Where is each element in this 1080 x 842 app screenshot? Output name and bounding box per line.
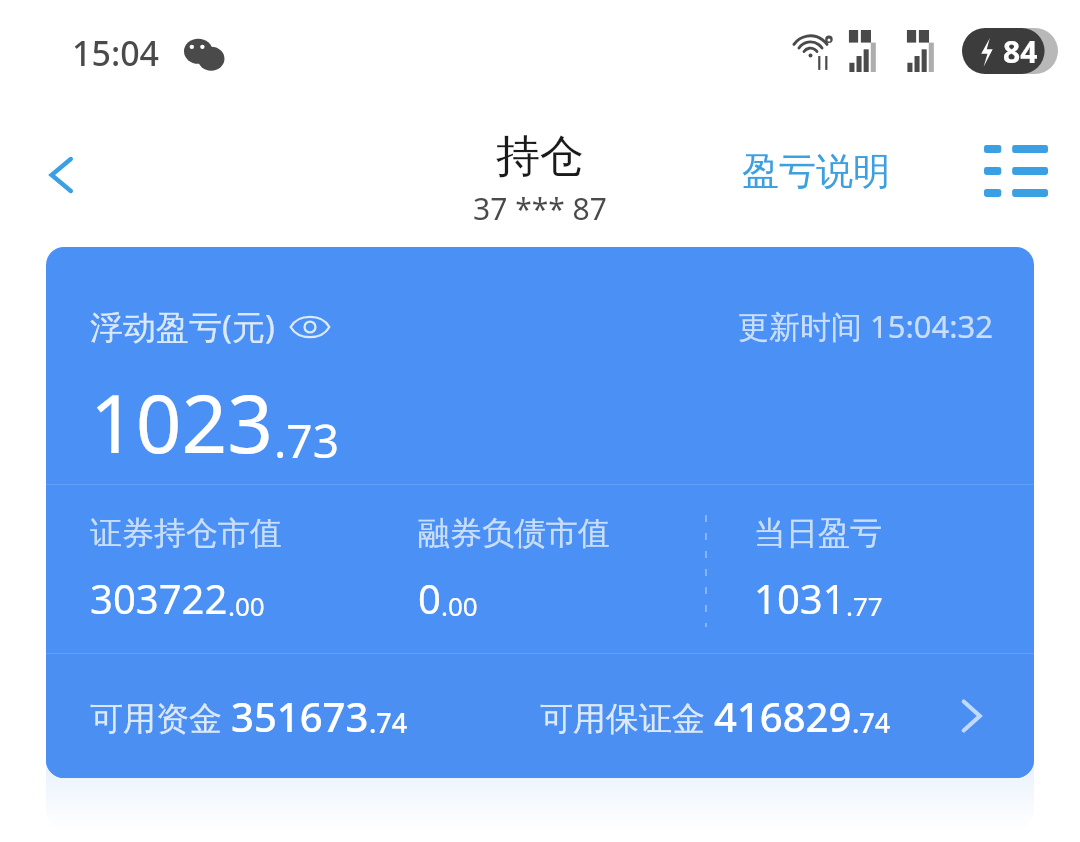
staticText: 更新时间 15:04:32 (738, 305, 994, 347)
staticText: 37 *** 87 (473, 188, 607, 229)
staticText: 0 (418, 571, 441, 625)
button[interactable]: List view (976, 131, 1056, 211)
staticText: 融券负债市值 (418, 513, 610, 553)
staticText: 303722 (90, 571, 228, 625)
staticText: 浮动盈亏(元) (90, 304, 275, 349)
staticText: .74 (369, 704, 408, 741)
staticText: 1031 (754, 571, 846, 625)
staticText: 84 (1003, 31, 1038, 72)
staticText: 15:04 (72, 30, 160, 76)
staticText: .00 (228, 588, 265, 623)
staticText: 416829 (714, 689, 852, 743)
staticText: .74 (852, 704, 891, 741)
staticText: .77 (846, 588, 883, 623)
other: Toggle visibility (289, 306, 331, 348)
other: More account details (950, 694, 994, 738)
staticText: .00 (441, 588, 478, 623)
button[interactable]: 可用资金 (46, 654, 1034, 778)
button[interactable]: 浮动盈亏(元) (90, 304, 331, 349)
staticText: .73 (274, 409, 339, 472)
staticText: 可用保证金 (540, 695, 714, 740)
staticText: 351673 (231, 689, 369, 743)
button[interactable]: Back (20, 133, 104, 217)
staticText: 持仓 (496, 129, 584, 184)
staticText: 1023 (90, 367, 274, 476)
staticText: 可用资金 (90, 695, 231, 740)
button[interactable]: 盈亏说明 (736, 140, 896, 203)
staticText: 盈亏说明 (742, 148, 890, 195)
staticText: 证券持仓市值 (90, 513, 282, 553)
staticText: 当日盈亏 (754, 513, 882, 553)
